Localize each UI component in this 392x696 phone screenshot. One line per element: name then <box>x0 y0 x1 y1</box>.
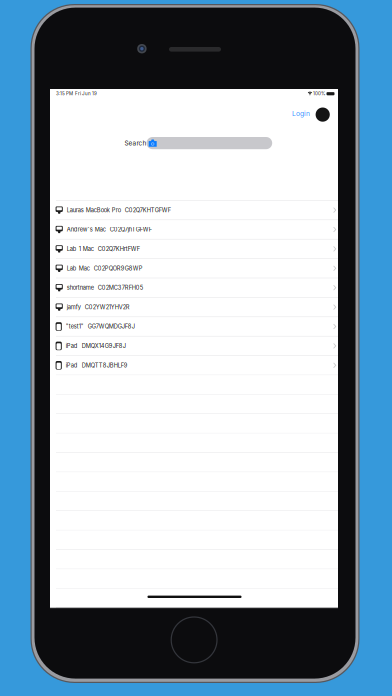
button[interactable]: shortname C02MC37RFH05 <box>50 278 338 297</box>
staticText: 100% <box>312 91 325 96</box>
staticText: iPad DMQX14G9JF8J <box>62 342 126 349</box>
button[interactable]: Lauras MacBook Pro C02Q7KHTGFWF <box>50 201 338 219</box>
button[interactable]: Account <box>316 107 330 122</box>
staticText: Fri Jun 19 <box>73 91 97 96</box>
button[interactable]: Login <box>292 109 314 119</box>
staticText: Lauras MacBook Pro C02Q7KHTGFWF <box>63 207 171 213</box>
staticText: Lab 1 Mac C02Q7KHrtFWF <box>63 245 140 252</box>
staticText: Login <box>292 110 310 118</box>
staticText: Andrew's Mac C02Q7jhTGFWF <box>63 226 152 233</box>
button[interactable]: Search <box>146 137 272 149</box>
button[interactable]: Lab Mac C02PQOR9G8WP <box>50 259 338 278</box>
staticText: 3:15 PM <box>56 91 73 96</box>
button[interactable]: iPad DMQTT8JBHLF9 <box>50 356 338 375</box>
staticText: Search <box>124 139 146 147</box>
button[interactable]: jamfy C02YW21YHV2R <box>50 298 338 316</box>
staticText: "test1" GG7WQMDGJF8J <box>62 323 135 330</box>
button[interactable]: Lab 1 Mac C02Q7KHrtFWF <box>50 239 338 258</box>
button[interactable]: "test1" GG7WQMDGJF8J <box>50 317 338 336</box>
button[interactable]: Andrew's Mac C02Q7jhTGFWF <box>50 220 338 239</box>
staticText: Lab Mac C02PQOR9G8WP <box>63 265 143 272</box>
staticText: shortname C02MC37RFH05 <box>63 284 143 291</box>
staticText: jamfy C02YW21YHV2R <box>63 304 130 310</box>
staticText: iPad DMQTT8JBHLF9 <box>62 362 128 369</box>
button[interactable]: iPad DMQX14G9JF8J <box>50 336 338 355</box>
